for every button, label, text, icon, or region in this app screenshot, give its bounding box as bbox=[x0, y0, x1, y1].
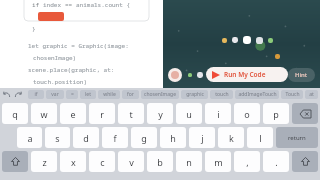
staticText: == bbox=[65, 1, 76, 9]
button[interactable]: Run My Code bbox=[206, 67, 288, 82]
button[interactable]: Shift bbox=[292, 151, 318, 172]
button[interactable]: touch bbox=[210, 90, 233, 99]
staticText: chosenImage bbox=[144, 91, 176, 98]
staticText: m bbox=[214, 156, 223, 168]
staticText: return bbox=[288, 134, 306, 142]
button[interactable]: s bbox=[45, 127, 70, 148]
button[interactable]: for bbox=[122, 90, 139, 99]
staticText: Hint bbox=[295, 71, 308, 79]
staticText: b bbox=[157, 156, 163, 168]
staticText: k bbox=[229, 132, 234, 144]
button[interactable]: i bbox=[205, 103, 231, 124]
staticText: d bbox=[83, 132, 89, 144]
button[interactable]: Backspace bbox=[292, 103, 318, 124]
staticText: let bbox=[85, 91, 91, 98]
button[interactable]: y bbox=[147, 103, 173, 124]
staticText: f bbox=[113, 132, 117, 144]
staticText: s bbox=[55, 132, 60, 144]
staticText: w bbox=[40, 108, 48, 120]
staticText: y bbox=[158, 108, 163, 120]
button[interactable]: , bbox=[234, 151, 260, 172]
staticText: t bbox=[129, 108, 133, 120]
staticText: c bbox=[100, 156, 105, 168]
staticText: g bbox=[141, 132, 147, 144]
button[interactable]: l bbox=[247, 127, 273, 148]
button[interactable]: at bbox=[305, 90, 318, 99]
button[interactable]: c bbox=[89, 151, 115, 172]
button[interactable]: Touch bbox=[281, 90, 303, 99]
staticText: Touch bbox=[285, 91, 300, 98]
button[interactable]: t bbox=[118, 103, 144, 124]
button[interactable] bbox=[38, 12, 64, 21]
button[interactable]: w bbox=[31, 103, 57, 124]
button[interactable]: o bbox=[234, 103, 260, 124]
button[interactable]: n bbox=[176, 151, 202, 172]
staticText: index bbox=[43, 1, 65, 9]
button[interactable]: while bbox=[98, 90, 120, 99]
button[interactable]: m bbox=[205, 151, 231, 172]
button[interactable]: if bbox=[28, 90, 44, 99]
button[interactable]: let bbox=[80, 90, 96, 99]
staticText: let graphic = Graphic(image: bbox=[28, 42, 129, 50]
staticText: Run My Code bbox=[224, 70, 266, 79]
staticText: r bbox=[100, 108, 104, 120]
button[interactable]: j bbox=[189, 127, 215, 148]
staticText: for bbox=[127, 91, 134, 98]
staticText: chosenImage) bbox=[33, 54, 77, 62]
staticText: e bbox=[70, 108, 76, 120]
button[interactable]: u bbox=[176, 103, 202, 124]
staticText: i bbox=[217, 108, 220, 120]
staticText: if bbox=[34, 91, 38, 98]
button[interactable]: q bbox=[2, 103, 28, 124]
staticText: . bbox=[275, 156, 278, 168]
staticText: o bbox=[244, 108, 250, 120]
button[interactable]: return bbox=[276, 127, 318, 148]
button[interactable]: addImageTouch bbox=[235, 90, 279, 99]
button[interactable]: a bbox=[17, 127, 42, 148]
staticText: touch bbox=[215, 91, 229, 98]
staticText: = bbox=[71, 91, 74, 98]
staticText: graphic bbox=[186, 91, 204, 98]
button[interactable]: f bbox=[102, 127, 128, 148]
button[interactable]: Character bbox=[168, 68, 182, 82]
button[interactable]: v bbox=[118, 151, 144, 172]
button[interactable]: Undo bbox=[2, 90, 11, 99]
staticText: z bbox=[42, 156, 47, 168]
staticText: , bbox=[246, 156, 249, 168]
staticText: } bbox=[32, 25, 36, 33]
button[interactable]: p bbox=[263, 103, 289, 124]
staticText: a bbox=[27, 132, 33, 144]
staticText: p bbox=[273, 108, 279, 120]
button[interactable]: = bbox=[66, 90, 78, 99]
staticText: scene.place(graphic, at: bbox=[28, 66, 115, 74]
button[interactable]: chosenImage bbox=[141, 90, 179, 99]
button[interactable]: g bbox=[131, 127, 157, 148]
button[interactable]: Redo bbox=[14, 90, 23, 99]
staticText: u bbox=[186, 108, 192, 120]
staticText: at bbox=[309, 91, 314, 98]
button[interactable]: d bbox=[73, 127, 99, 148]
staticText: q bbox=[12, 108, 18, 120]
staticText: addImageTouch bbox=[238, 91, 277, 98]
button[interactable]: b bbox=[147, 151, 173, 172]
staticText: var bbox=[51, 91, 59, 98]
staticText: x bbox=[71, 156, 76, 168]
button[interactable]: . bbox=[263, 151, 289, 172]
button[interactable]: h bbox=[160, 127, 186, 148]
button[interactable]: r bbox=[89, 103, 115, 124]
button[interactable]: e bbox=[60, 103, 86, 124]
button[interactable]: x bbox=[60, 151, 86, 172]
button[interactable]: var bbox=[46, 90, 64, 99]
button[interactable]: Shift bbox=[2, 151, 28, 172]
staticText: animals.count { bbox=[76, 1, 131, 9]
button[interactable]: Hint bbox=[288, 68, 315, 82]
staticText: l bbox=[259, 132, 262, 144]
staticText: touch.position) bbox=[33, 78, 88, 86]
staticText: n bbox=[186, 156, 192, 168]
staticText: v bbox=[129, 156, 134, 168]
staticText: h bbox=[170, 132, 176, 144]
button[interactable]: k bbox=[218, 127, 244, 148]
button[interactable]: graphic bbox=[181, 90, 208, 99]
button[interactable]: z bbox=[31, 151, 57, 172]
staticText: j bbox=[201, 132, 204, 144]
